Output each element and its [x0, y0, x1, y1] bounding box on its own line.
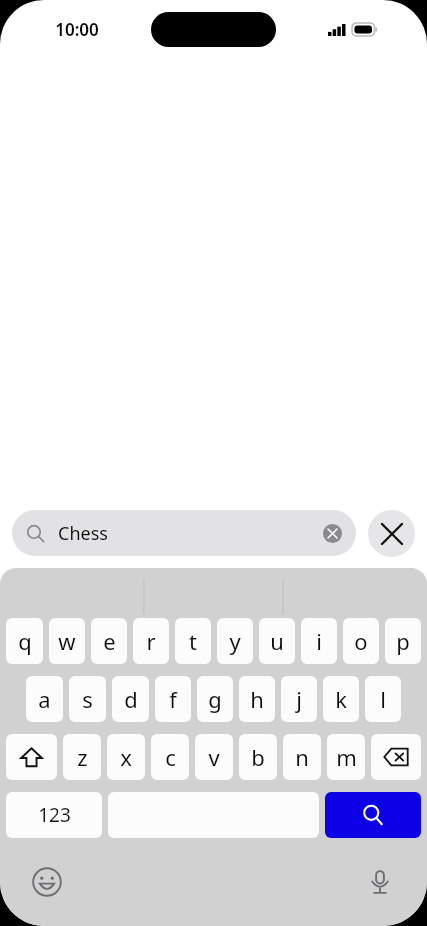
staticText: Chess — [58, 521, 108, 546]
staticText: d — [124, 684, 138, 714]
button[interactable]: v — [195, 734, 233, 780]
button[interactable]: s — [69, 676, 106, 722]
staticText: 10:00 — [55, 18, 99, 41]
staticText: h — [250, 684, 264, 714]
staticText: b — [251, 742, 265, 772]
staticText: j — [296, 684, 302, 714]
button[interactable]: c — [151, 734, 189, 780]
staticText: z — [77, 742, 88, 772]
staticText: y — [229, 626, 241, 656]
button[interactable]: 123 — [6, 792, 102, 838]
button[interactable]: f — [155, 676, 191, 722]
button[interactable]: j — [281, 676, 317, 722]
button[interactable]: r — [133, 618, 169, 664]
staticText: g — [208, 684, 222, 714]
button[interactable]: a — [26, 676, 63, 722]
button[interactable]: q — [6, 618, 43, 664]
staticText: u — [270, 626, 284, 656]
staticText: l — [380, 684, 386, 714]
staticText: n — [295, 742, 309, 772]
button[interactable]: Chess — [12, 510, 356, 556]
button[interactable]: u — [259, 618, 295, 664]
staticText: m — [336, 742, 357, 772]
staticText: p — [396, 626, 410, 656]
staticText: a — [38, 684, 51, 714]
button[interactable]: w — [49, 618, 85, 664]
staticText: v — [208, 742, 220, 772]
button[interactable]: k — [323, 676, 359, 722]
button[interactable]: Close search — [368, 510, 415, 557]
staticText: w — [58, 626, 76, 656]
button[interactable]: e — [91, 618, 127, 664]
staticText: k — [335, 684, 347, 714]
button[interactable]: Backspace — [371, 734, 421, 780]
button[interactable]: h — [239, 676, 275, 722]
staticText: t — [189, 626, 197, 656]
staticText: q — [18, 626, 32, 656]
button[interactable]: m — [327, 734, 365, 780]
button[interactable]: d — [112, 676, 149, 722]
button[interactable]: l — [365, 676, 401, 722]
staticText: s — [82, 684, 93, 714]
staticText: i — [316, 626, 322, 656]
staticText: f — [169, 684, 177, 714]
button[interactable]: Search — [325, 792, 421, 838]
button[interactable]: Voice input — [359, 861, 401, 903]
button[interactable]: t — [175, 618, 211, 664]
button[interactable]: Emoji — [26, 861, 68, 903]
button[interactable]: p — [385, 618, 421, 664]
button[interactable]: b — [239, 734, 277, 780]
button[interactable]: i — [301, 618, 337, 664]
button[interactable]: y — [217, 618, 253, 664]
staticText: x — [120, 742, 132, 772]
button[interactable]: Clear search — [323, 524, 342, 543]
button[interactable]: x — [107, 734, 145, 780]
staticText: r — [146, 626, 156, 656]
button[interactable]: o — [343, 618, 379, 664]
button[interactable]: z — [63, 734, 101, 780]
staticText: c — [165, 742, 176, 772]
staticText: e — [103, 626, 116, 656]
button[interactable]: g — [197, 676, 233, 722]
button[interactable]: n — [283, 734, 321, 780]
staticText: o — [354, 626, 368, 656]
staticText: 123 — [38, 802, 71, 828]
button[interactable]: Shift — [6, 734, 57, 780]
